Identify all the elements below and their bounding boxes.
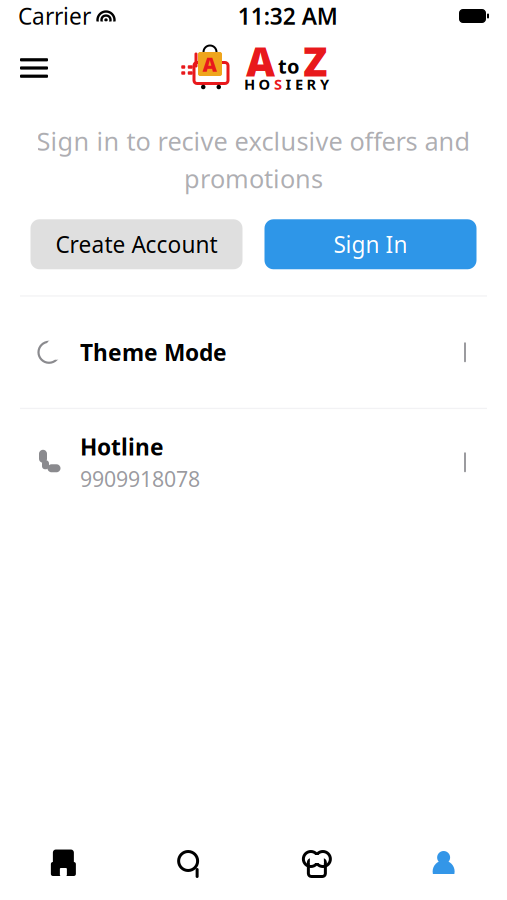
- button[interactable]: Account: [380, 836, 507, 892]
- staticText: I: [285, 74, 291, 94]
- staticText: Hotline: [80, 432, 164, 462]
- button[interactable]: Home: [0, 836, 127, 892]
- button[interactable]: Create Account: [30, 219, 242, 269]
- staticText: to: [278, 53, 300, 79]
- staticText: E: [295, 74, 303, 94]
- staticText: promotions: [184, 162, 323, 195]
- staticText: Theme Mode: [80, 337, 227, 367]
- staticText: A: [202, 51, 217, 77]
- staticText: 9909918078: [80, 465, 200, 493]
- staticText: Carrier: [18, 1, 91, 31]
- staticText: 11:32 AM: [238, 1, 338, 31]
- button[interactable]: Favorites: [253, 836, 380, 892]
- staticText: H: [244, 74, 255, 94]
- button[interactable]: Hotline: [0, 409, 507, 515]
- staticText: Sign In: [333, 229, 407, 259]
- staticText: S: [274, 74, 282, 94]
- button[interactable]: Sign In: [264, 219, 476, 269]
- button[interactable]: Search: [127, 836, 254, 892]
- staticText: Create Account: [55, 229, 217, 259]
- button[interactable]: Theme Mode: [0, 297, 507, 408]
- button[interactable]: Menu: [0, 45, 54, 91]
- staticText: Sign in to recive exclusive offers and: [36, 124, 470, 158]
- staticText: A: [246, 34, 275, 87]
- staticText: O: [258, 74, 270, 94]
- staticText: Y: [320, 74, 329, 94]
- staticText: Z: [303, 34, 327, 87]
- staticText: R: [306, 74, 316, 94]
